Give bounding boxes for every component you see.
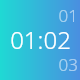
staticText: 01:02	[10, 23, 71, 56]
button[interactable]: Hours complication	[58, 4, 78, 27]
staticText: 01	[58, 4, 78, 27]
staticText: 03	[58, 53, 78, 76]
button[interactable]: Seconds complication	[58, 53, 78, 76]
button[interactable]: 01:02	[10, 23, 71, 56]
